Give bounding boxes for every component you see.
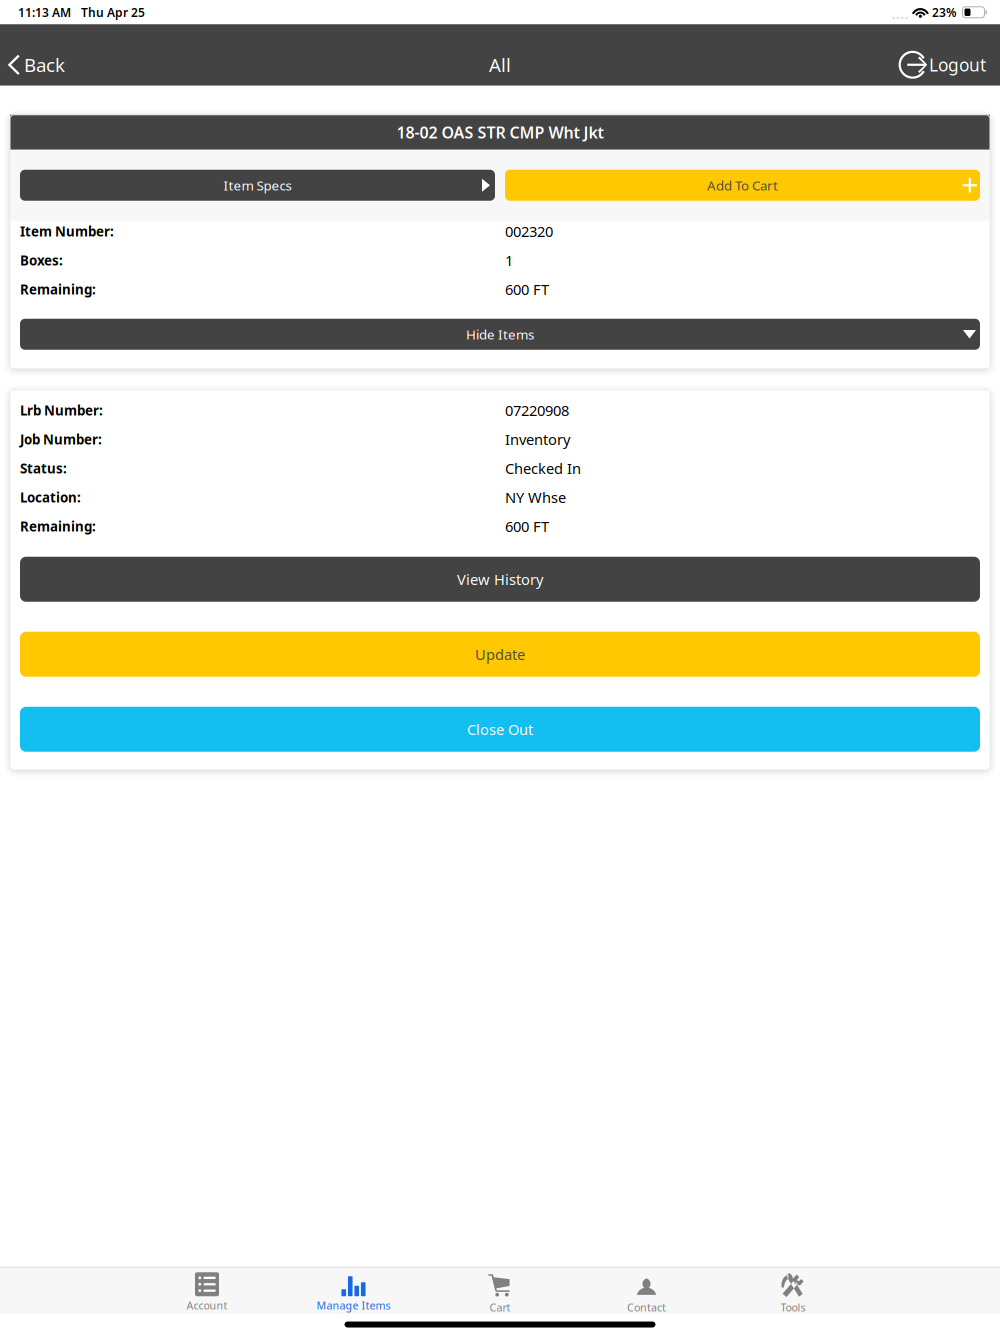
button[interactable]: Tools: [720, 1267, 866, 1315]
staticText: 1: [505, 250, 513, 270]
staticText: Thu Apr 25: [81, 4, 145, 20]
staticText: Boxes:: [20, 251, 63, 269]
button[interactable]: Logout: [884, 44, 1000, 86]
staticText: 002320: [505, 221, 553, 241]
staticText: Status:: [20, 459, 67, 477]
staticText: 07220908: [505, 400, 569, 420]
button[interactable]: View History: [20, 557, 980, 602]
staticText: Job Number:: [20, 430, 102, 448]
staticText: Tools: [780, 1300, 805, 1314]
staticText: Location:: [20, 488, 81, 506]
staticText: Remaining:: [20, 280, 96, 298]
button[interactable]: Contact: [573, 1267, 720, 1315]
button[interactable]: Cart: [427, 1267, 573, 1315]
staticText: Update: [475, 644, 525, 664]
button[interactable]: Item Specs: [20, 170, 495, 201]
button[interactable]: Add To Cart: [505, 170, 980, 201]
staticText: Item Number:: [20, 222, 114, 240]
staticText: NY Whse: [505, 487, 566, 507]
staticText: Account: [186, 1298, 227, 1312]
staticText: 23%: [932, 4, 957, 20]
staticText: Remaining:: [20, 517, 96, 535]
staticText: Close Out: [467, 719, 533, 739]
staticText: 600 FT: [505, 279, 549, 299]
staticText: Hide Items: [466, 325, 534, 343]
staticText: All: [489, 52, 511, 77]
button[interactable]: Back: [0, 44, 79, 86]
staticText: Manage Items: [316, 1298, 390, 1312]
staticText: Lrb Number:: [20, 401, 103, 419]
staticText: 18-02 OAS STR CMP Wht Jkt: [396, 122, 603, 143]
staticText: 11:13 AM: [18, 4, 71, 20]
staticText: Cart: [489, 1300, 510, 1314]
staticText: Contact: [627, 1300, 666, 1314]
button[interactable]: Hide Items: [20, 319, 980, 350]
button[interactable]: Update: [20, 632, 980, 677]
button[interactable]: Manage Items: [280, 1267, 427, 1315]
staticText: Back: [24, 52, 65, 77]
staticText: View History: [457, 569, 543, 589]
staticText: Logout: [929, 53, 986, 76]
button[interactable]: Account: [134, 1267, 280, 1315]
staticText: Checked In: [505, 458, 581, 478]
staticText: Add To Cart: [707, 176, 778, 194]
staticText: Inventory: [505, 429, 570, 449]
button[interactable]: Close Out: [20, 707, 980, 752]
staticText: 600 FT: [505, 516, 549, 536]
staticText: Item Specs: [223, 176, 291, 194]
